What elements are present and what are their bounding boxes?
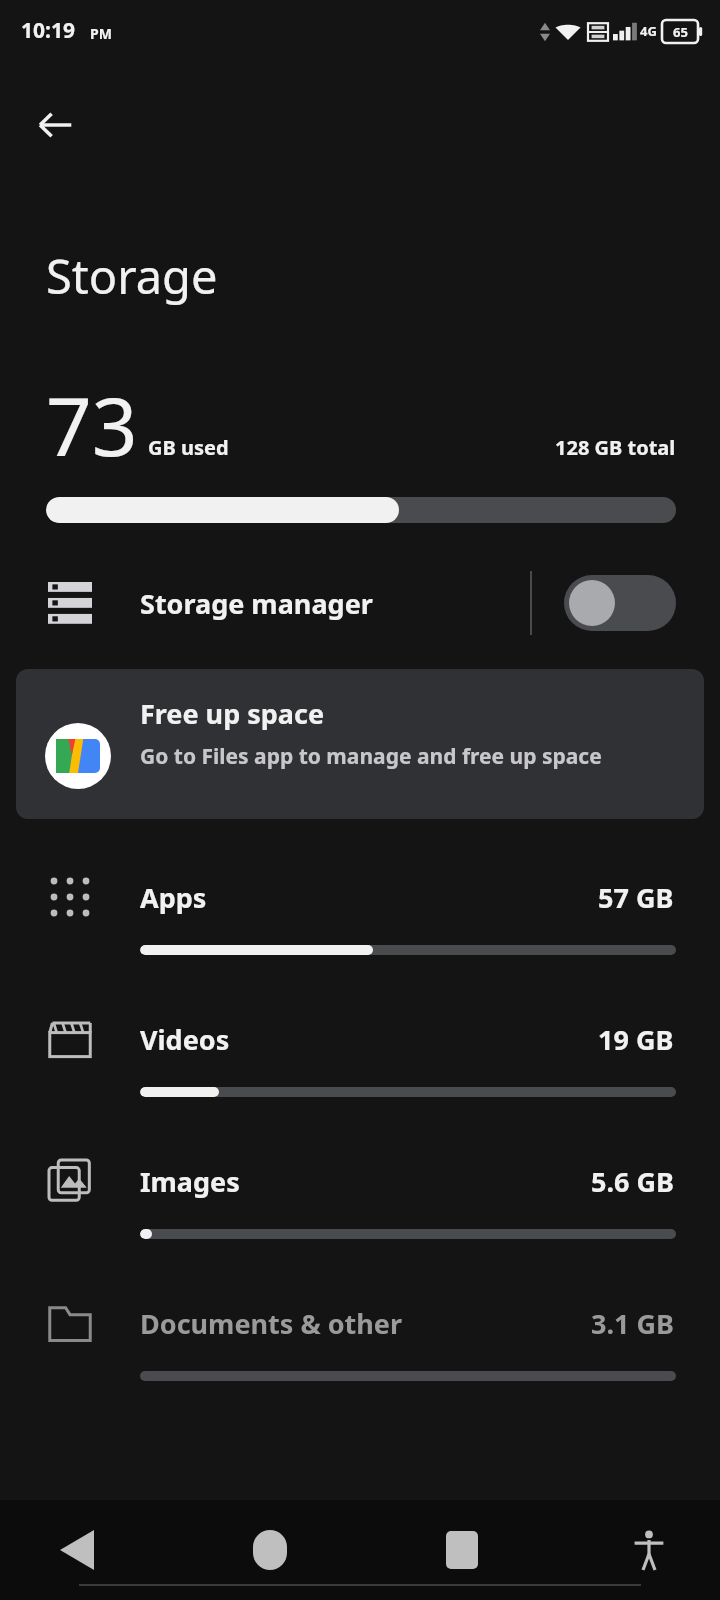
staticText: Apps <box>140 879 598 916</box>
staticText: 73 <box>46 370 138 479</box>
staticText: 4G <box>640 22 657 40</box>
staticText: GB used <box>148 434 229 461</box>
button[interactable]: Images <box>0 1133 720 1275</box>
staticText: 3.1 GB <box>591 1305 674 1342</box>
button[interactable]: Accessibility <box>618 1519 680 1581</box>
staticText: Go to Files app to manage and free up sp… <box>140 742 602 771</box>
button[interactable]: Storage manager toggle <box>564 575 676 631</box>
button[interactable]: Home <box>233 1513 307 1587</box>
staticText: Storage manager <box>140 585 530 622</box>
staticText: Videos <box>140 1021 598 1058</box>
staticText: Free up space <box>140 695 325 732</box>
staticText: PM <box>90 24 112 43</box>
button[interactable]: Recent apps <box>425 1513 499 1587</box>
button[interactable]: Documents & other <box>0 1275 720 1417</box>
button[interactable]: Storage manager <box>0 567 720 639</box>
staticText: Images <box>140 1163 591 1200</box>
staticText: 57 GB <box>598 879 674 916</box>
button[interactable]: Apps <box>0 849 720 991</box>
staticText: 65 <box>673 23 688 41</box>
button[interactable]: Back <box>40 1513 114 1587</box>
staticText: 128 GB total <box>555 434 676 461</box>
staticText: Storage <box>46 244 218 308</box>
button[interactable]: Back <box>22 92 88 158</box>
staticText: 5.6 GB <box>591 1163 674 1200</box>
staticText: Documents & other <box>140 1305 591 1342</box>
staticText: 10:19 <box>21 16 75 45</box>
button[interactable]: Videos <box>0 991 720 1133</box>
staticText: 19 GB <box>598 1021 674 1058</box>
button[interactable]: Free up space <box>16 669 704 819</box>
